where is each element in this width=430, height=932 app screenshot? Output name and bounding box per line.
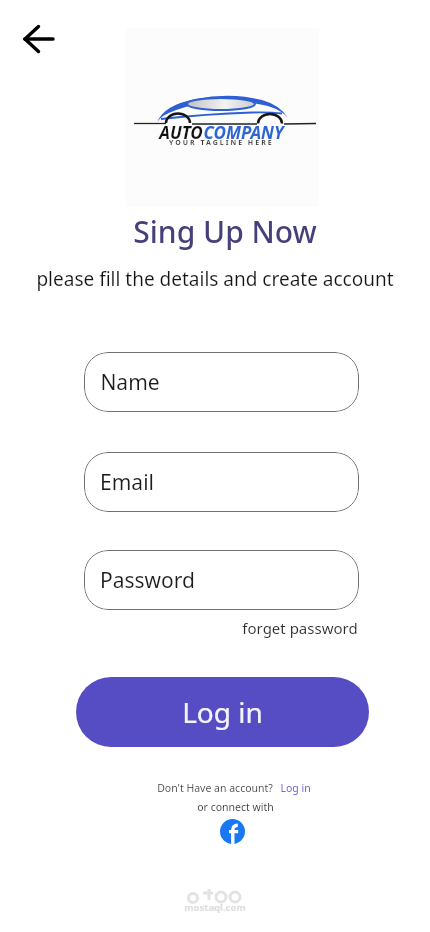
staticText: Password: [100, 566, 195, 595]
staticText: Log in: [182, 693, 263, 731]
button[interactable]: Name: [84, 352, 359, 412]
staticText: COMPANY: [203, 121, 284, 144]
staticText: Log in: [280, 781, 311, 795]
staticText: Sing Up Now: [133, 211, 317, 252]
button[interactable]: [14, 16, 64, 62]
staticText: YOUR TAGLINE HERE: [169, 138, 274, 148]
staticText: Email: [100, 468, 154, 497]
staticText: or connect with: [197, 800, 274, 814]
button[interactable]: Password: [84, 550, 359, 610]
staticText: Don't Have an account?: [157, 781, 273, 795]
staticText: please fill the details and create accou…: [36, 266, 394, 292]
button[interactable]: Log in: [76, 677, 369, 747]
button[interactable]: Email: [84, 452, 359, 512]
button[interactable]: forget password: [84, 618, 358, 638]
staticText: mostaql.com: [184, 901, 246, 914]
staticText: forget password: [242, 618, 358, 638]
button[interactable]: Log in: [280, 781, 311, 795]
staticText: Name: [100, 368, 160, 397]
staticText: AUTO: [159, 121, 203, 144]
button[interactable]: [220, 819, 245, 844]
